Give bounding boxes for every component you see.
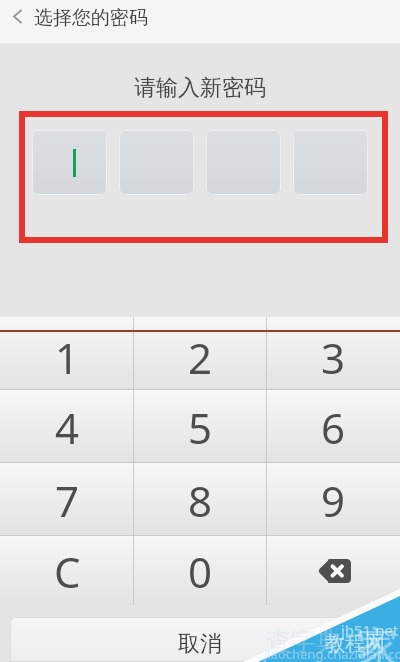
button[interactable]: 9	[267, 463, 400, 535]
button[interactable]: Backspace	[267, 536, 400, 605]
button[interactable]	[293, 130, 368, 195]
button[interactable]: 取消	[10, 617, 390, 662]
staticText: 7	[55, 472, 80, 529]
staticText: jb51.net	[341, 620, 399, 640]
staticText: 5	[188, 399, 213, 456]
staticText: 家	[356, 622, 398, 662]
button[interactable]	[32, 130, 107, 195]
button[interactable]	[119, 130, 194, 195]
button[interactable]: 2	[134, 317, 267, 389]
staticText: 9	[321, 472, 346, 529]
staticText: 6	[321, 399, 346, 456]
staticText: 选择您的密码	[34, 6, 148, 30]
button[interactable]: 1	[0, 317, 134, 389]
button[interactable]	[206, 130, 281, 195]
staticText: 0	[188, 543, 213, 600]
staticText: 教程网	[325, 631, 385, 656]
button[interactable]: 0	[134, 536, 267, 605]
staticText: 3	[321, 329, 346, 386]
staticText: 2	[188, 329, 213, 386]
button[interactable]: C	[0, 536, 134, 605]
button[interactable]: Back	[0, 0, 400, 43]
button[interactable]: 3	[267, 317, 400, 389]
button[interactable]: 8	[134, 463, 267, 535]
other: Backspace	[317, 559, 351, 583]
staticText: 4	[55, 399, 80, 456]
button[interactable]: 7	[0, 463, 134, 535]
staticText: 1	[55, 329, 80, 386]
staticText: 请输入新密码	[134, 74, 266, 102]
button[interactable]: 5	[134, 390, 267, 462]
staticText: 查字典	[266, 626, 341, 657]
button[interactable]: 6	[267, 390, 400, 462]
staticText: 取消	[178, 630, 222, 658]
staticText: C	[54, 543, 81, 600]
other: Back	[13, 10, 22, 23]
staticText: jiaocheng.chazidian.com	[264, 645, 400, 662]
button[interactable]: 4	[0, 390, 134, 462]
staticText: 8	[188, 472, 213, 529]
